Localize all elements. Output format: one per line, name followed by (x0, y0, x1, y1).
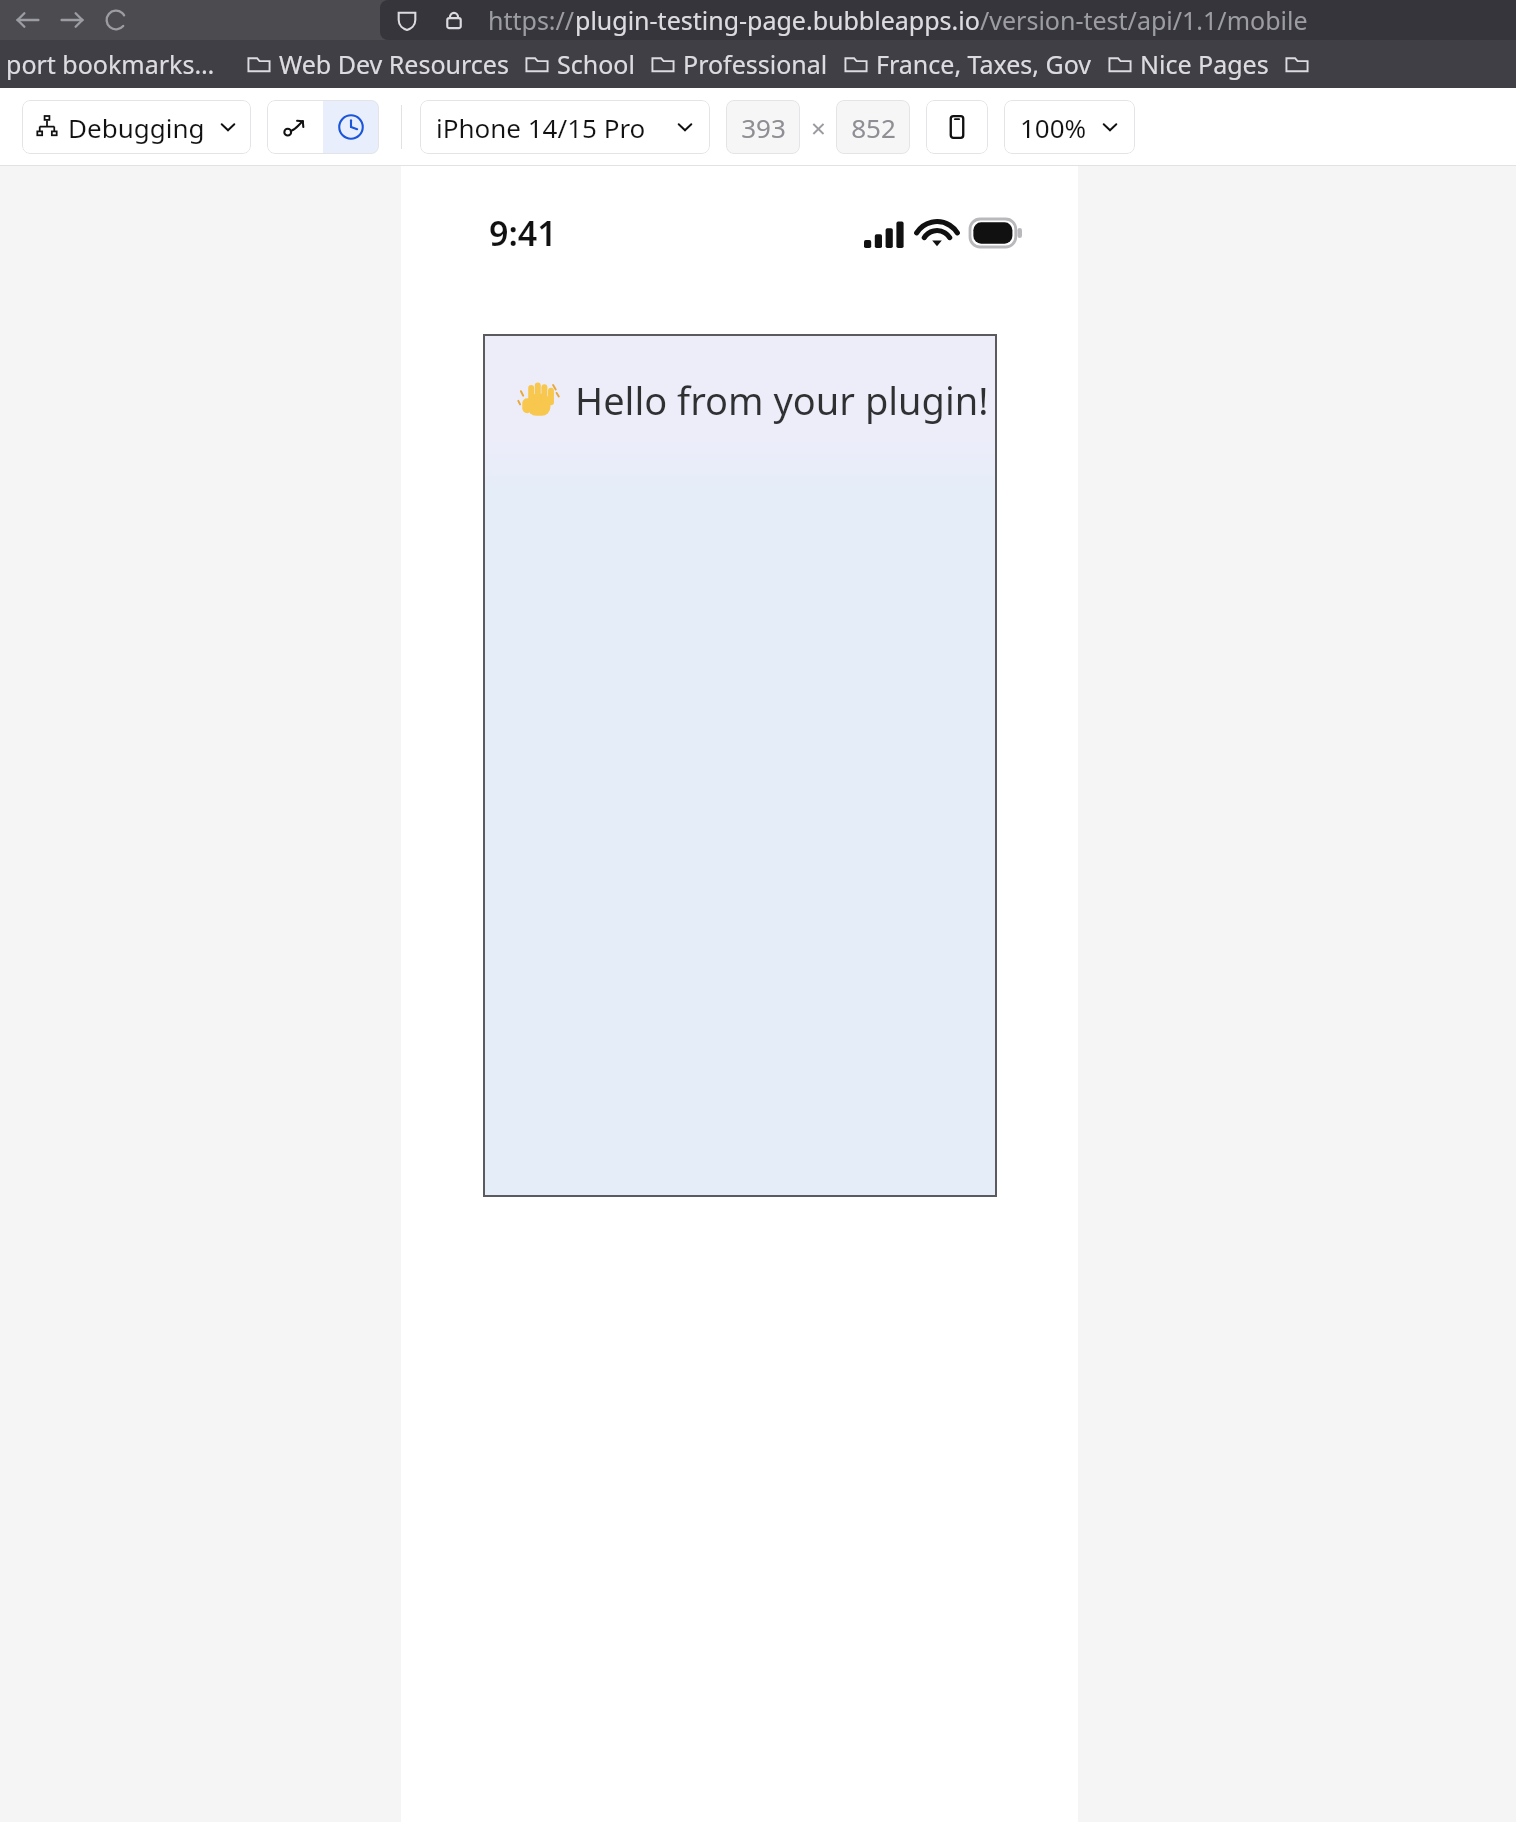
button[interactable]: Forward (50, 0, 94, 40)
button[interactable]: 100% (1004, 100, 1135, 154)
button[interactable]: https:// (380, 0, 1516, 40)
staticText: https:// (488, 3, 575, 37)
staticText: Professional (683, 47, 828, 81)
staticText: × (811, 110, 826, 145)
button[interactable] (1277, 52, 1317, 76)
staticText: 9:41 (489, 210, 557, 256)
staticText: Hello from your plugin! (575, 374, 989, 426)
button[interactable]: iPhone 14/15 Pro (420, 100, 710, 154)
button[interactable]: History (323, 100, 379, 154)
button[interactable]: Throttling (267, 100, 323, 154)
staticText: 393 (741, 110, 786, 145)
button[interactable]: 393 (726, 100, 800, 154)
button[interactable]: Web Dev Resources (239, 43, 517, 85)
staticText: Debugging (68, 110, 205, 145)
button[interactable]: port bookmarks… (0, 47, 221, 81)
staticText: France, Taxes, Gov (876, 47, 1092, 81)
button[interactable]: Professional (643, 43, 836, 85)
button[interactable]: Nice Pages (1100, 43, 1277, 85)
staticText: /version-test/api/1.1/mobile (980, 3, 1308, 37)
button[interactable]: Debugging (22, 100, 251, 154)
staticText: plugin-testing-page.bubbleapps.io (575, 3, 980, 37)
staticText: Web Dev Resources (279, 47, 509, 81)
button[interactable]: Hello from your plugin! (483, 334, 997, 1197)
button[interactable]: Back (6, 0, 50, 40)
staticText: iPhone 14/15 Pro (436, 110, 646, 145)
button[interactable]: 852 (836, 100, 910, 154)
staticText: School (557, 47, 635, 81)
button[interactable]: Rotate (926, 100, 988, 154)
button[interactable]: Reload (94, 0, 138, 40)
button[interactable]: France, Taxes, Gov (836, 43, 1100, 85)
staticText: Nice Pages (1140, 47, 1269, 81)
staticText: 852 (851, 110, 896, 145)
button[interactable]: School (517, 43, 643, 85)
staticText: 100% (1020, 110, 1087, 145)
